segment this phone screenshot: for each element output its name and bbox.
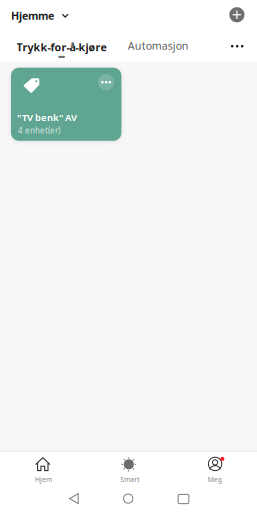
button[interactable]: Smart [86, 452, 172, 485]
staticText: Smart [120, 475, 139, 484]
staticText: Hjem [35, 475, 52, 484]
button[interactable]: Automasjon [127, 36, 190, 56]
staticText: Meg [208, 475, 222, 484]
button[interactable]: Hjemme [11, 5, 75, 27]
button[interactable]: Recent apps [163, 486, 203, 512]
button[interactable]: Back [54, 486, 94, 512]
button[interactable]: More options [225, 36, 249, 56]
staticText: Hjemme [11, 8, 54, 23]
staticText: Automasjon [128, 39, 189, 53]
staticText: "TV benk" AV [17, 111, 77, 123]
button[interactable]: Scene options [98, 74, 114, 90]
button[interactable]: Hjem [0, 452, 86, 485]
staticText: Trykk-for-å-kjøre [17, 40, 107, 54]
button[interactable]: Meg [171, 452, 257, 485]
staticText: 4 enhet(er) [18, 125, 60, 136]
button[interactable]: "TV benk" AV [11, 68, 121, 141]
button[interactable]: Add device or scene [226, 4, 248, 26]
button[interactable]: Home [108, 486, 148, 512]
button[interactable]: Trykk-for-å-kjøre [17, 38, 107, 60]
